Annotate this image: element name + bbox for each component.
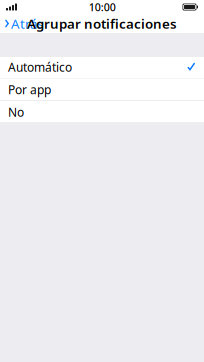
staticText: Atrás bbox=[11, 15, 43, 32]
staticText: No bbox=[8, 104, 24, 120]
staticText: Agrupar notificaciones bbox=[27, 15, 177, 32]
staticText: Automático bbox=[8, 59, 72, 75]
button[interactable]: No bbox=[0, 101, 204, 123]
staticText: 10:00 bbox=[89, 0, 116, 14]
button[interactable]: Automático bbox=[0, 56, 204, 78]
button[interactable]: Por app bbox=[0, 78, 204, 100]
button[interactable]: Atrás bbox=[0, 12, 43, 35]
staticText: Por app bbox=[8, 81, 51, 97]
